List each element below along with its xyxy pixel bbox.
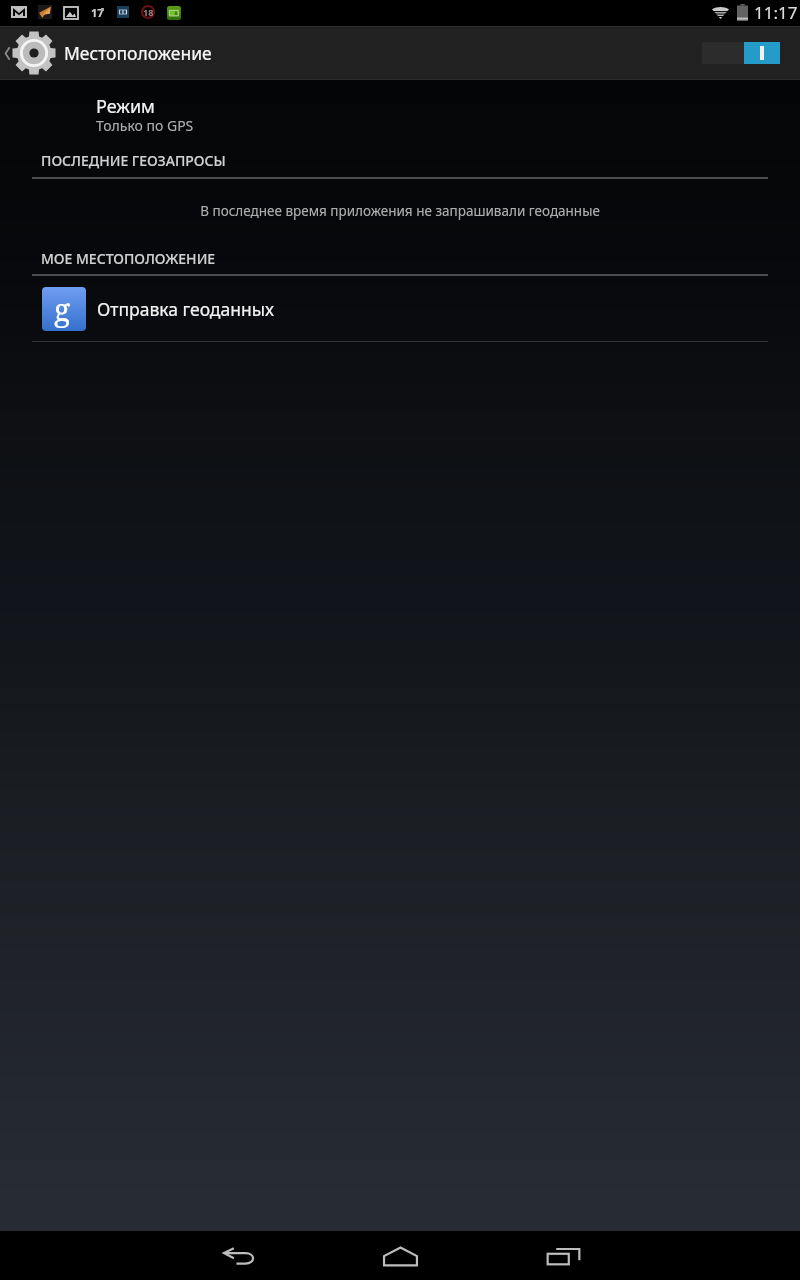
staticText: Отправка геоданных <box>97 297 274 321</box>
button[interactable]: Navigate up, Местоположение <box>0 31 222 75</box>
staticText: 11:17 <box>754 1 798 24</box>
button[interactable]: Home <box>350 1233 450 1280</box>
button[interactable]: g <box>0 276 800 341</box>
staticText: g <box>54 289 71 330</box>
staticText: МОЕ МЕСТОПОЛОЖЕНИЕ <box>41 249 216 268</box>
button[interactable]: Location on off switch <box>702 42 780 64</box>
button[interactable]: Back <box>189 1233 289 1280</box>
staticText: Местоположение <box>64 41 212 65</box>
button[interactable]: Recent apps <box>513 1233 613 1280</box>
staticText: Режим <box>96 94 155 119</box>
staticText: ПОСЛЕДНИЕ ГЕОЗАПРОСЫ <box>41 151 226 170</box>
button[interactable]: Режим <box>0 80 800 136</box>
staticText: 17 <box>91 5 104 20</box>
staticText: Только по GPS <box>96 116 194 135</box>
staticText: 18 <box>143 6 154 18</box>
staticText: В последнее время приложения не запрашив… <box>0 202 800 220</box>
